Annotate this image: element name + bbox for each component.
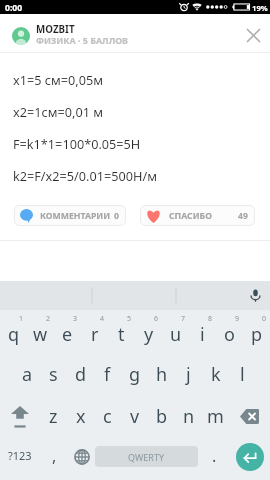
- staticText: 3: [73, 314, 78, 324]
- button[interactable]: f: [94, 353, 121, 395]
- button[interactable]: Space: [95, 436, 198, 477]
- button[interactable]: 7: [162, 310, 189, 353]
- button[interactable]: .: [198, 436, 230, 477]
- staticText: 7: [181, 314, 186, 324]
- button[interactable]: Enter: [230, 436, 270, 477]
- button[interactable]: v: [121, 395, 148, 438]
- staticText: x1=5 см=0,05м: [13, 71, 103, 88]
- button[interactable]: x: [67, 395, 94, 438]
- staticText: b: [156, 404, 168, 429]
- staticText: p: [251, 322, 263, 347]
- staticText: MOZBIT: [36, 23, 75, 36]
- button[interactable]: s: [40, 353, 67, 395]
- staticText: g: [129, 362, 141, 387]
- staticText: y: [144, 322, 154, 347]
- button[interactable]: m: [202, 395, 229, 438]
- button[interactable]: 1: [0, 310, 27, 353]
- button[interactable]: 3: [54, 310, 81, 353]
- staticText: x: [76, 404, 86, 429]
- staticText: 9: [235, 314, 240, 324]
- staticText: k: [211, 362, 221, 387]
- staticText: 0: [262, 314, 267, 324]
- staticText: s: [49, 362, 58, 387]
- button[interactable]: Change language: [68, 436, 95, 477]
- staticText: F=k1*1=100*0.05=5Н: [13, 135, 141, 152]
- staticText: q: [8, 322, 20, 347]
- button[interactable]: Voice input: [240, 281, 270, 310]
- button[interactable]: n: [175, 395, 202, 438]
- staticText: 0:00: [5, 2, 23, 14]
- staticText: k2=F/x2=5/0.01=500Н/м: [13, 167, 157, 184]
- staticText: i: [200, 322, 205, 347]
- staticText: j: [186, 362, 191, 387]
- staticText: h: [156, 362, 168, 387]
- staticText: r: [91, 322, 99, 347]
- button[interactable]: 4: [81, 310, 108, 353]
- button[interactable]: Backspace: [229, 395, 270, 438]
- staticText: d: [75, 362, 87, 387]
- button[interactable]: g: [121, 353, 148, 395]
- staticText: 5: [127, 314, 132, 324]
- button[interactable]: c: [94, 395, 121, 438]
- staticText: 19%: [252, 3, 268, 13]
- button[interactable]: z: [40, 395, 67, 438]
- button[interactable]: h: [148, 353, 175, 395]
- button[interactable]: a: [14, 353, 40, 395]
- staticText: 4: [100, 314, 105, 324]
- staticText: 2: [46, 314, 51, 324]
- staticText: o: [224, 322, 235, 347]
- button[interactable]: b: [148, 395, 175, 438]
- staticText: u: [170, 322, 182, 347]
- staticText: 0: [114, 210, 119, 222]
- staticText: m: [207, 404, 224, 429]
- staticText: v: [130, 404, 140, 429]
- button[interactable]: j: [175, 353, 202, 395]
- button[interactable]: 8: [189, 310, 216, 353]
- button[interactable]: Close: [237, 19, 270, 52]
- staticText: t: [118, 322, 125, 347]
- staticText: КОММЕНТАРИИ: [40, 210, 111, 222]
- staticText: QWERTY: [128, 451, 165, 463]
- staticText: 49: [238, 210, 248, 222]
- staticText: ,: [52, 445, 57, 467]
- staticText: w: [33, 322, 48, 347]
- button[interactable]: СПАСИБО: [140, 205, 255, 226]
- button[interactable]: k: [202, 353, 229, 395]
- staticText: l: [240, 362, 245, 387]
- staticText: f: [104, 362, 111, 387]
- staticText: n: [183, 404, 195, 429]
- staticText: 1: [19, 314, 24, 324]
- staticText: 8: [208, 314, 213, 324]
- staticText: z: [49, 404, 58, 429]
- staticText: x2=1см=0,01 м: [13, 103, 103, 120]
- button[interactable]: ,: [40, 436, 68, 477]
- staticText: e: [62, 322, 73, 347]
- button[interactable]: Shift: [0, 395, 40, 438]
- button[interactable]: ?123: [0, 436, 40, 477]
- button[interactable]: 0: [243, 310, 270, 353]
- button[interactable]: КОММЕНТАРИИ: [14, 205, 126, 226]
- button[interactable]: 6: [135, 310, 162, 353]
- staticText: a: [22, 362, 33, 387]
- button[interactable]: 9: [216, 310, 243, 353]
- staticText: c: [103, 404, 112, 429]
- staticText: .: [212, 445, 217, 467]
- button[interactable]: d: [67, 353, 94, 395]
- staticText: СПАСИБО: [169, 210, 212, 222]
- button[interactable]: 2: [27, 310, 54, 353]
- button[interactable]: 5: [108, 310, 135, 353]
- button[interactable]: l: [229, 353, 256, 395]
- staticText: ?123: [8, 448, 32, 463]
- staticText: 6: [154, 314, 159, 324]
- staticText: ФИЗИКА · 5 БАЛЛОВ: [36, 34, 128, 46]
